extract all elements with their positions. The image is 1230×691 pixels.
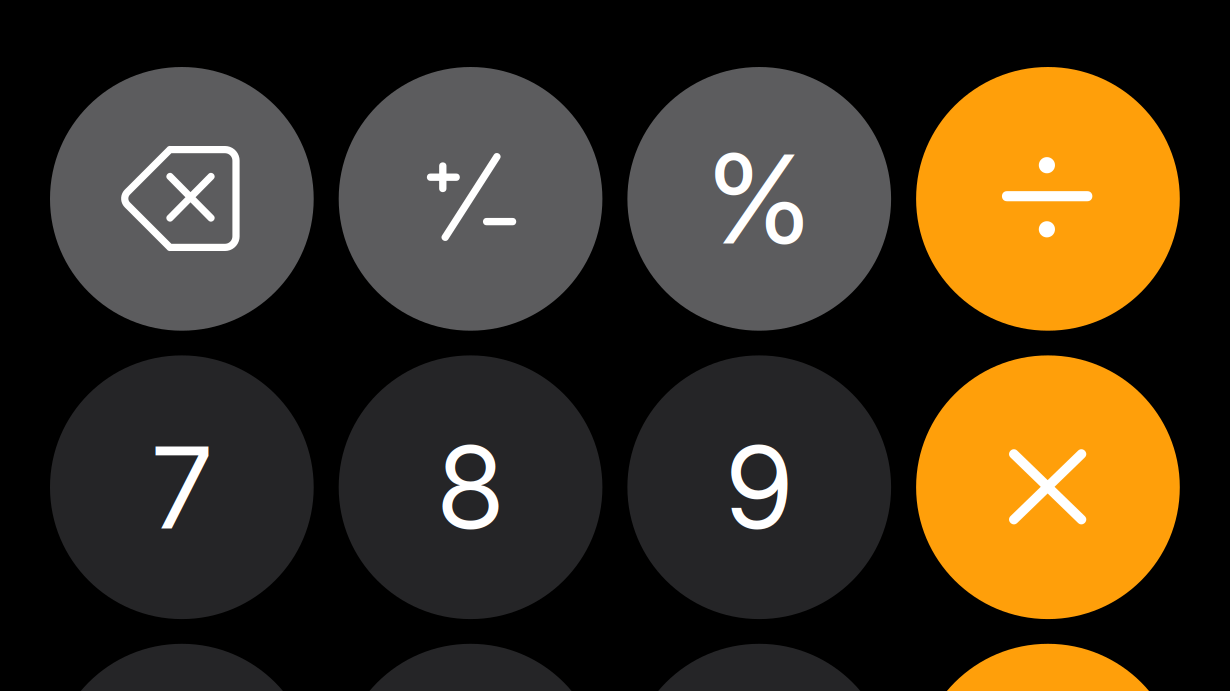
button[interactable]: 8 — [339, 355, 602, 619]
button[interactable]: 9 — [627, 355, 891, 619]
button[interactable]: 6 — [627, 644, 891, 691]
staticText: 8 — [437, 419, 503, 556]
staticText: 7 — [153, 419, 211, 556]
staticText: % — [707, 125, 811, 273]
button[interactable]: % — [627, 67, 891, 331]
button[interactable]: Multiply — [916, 355, 1180, 619]
button[interactable]: 5 — [339, 644, 602, 691]
button[interactable]: 7 — [50, 355, 314, 619]
button[interactable]: Subtract — [916, 644, 1180, 691]
button[interactable]: Delete — [50, 67, 314, 331]
button[interactable]: Divide — [916, 67, 1180, 331]
button[interactable]: 4 — [50, 644, 314, 691]
staticText: 9 — [726, 419, 792, 556]
button[interactable]: Toggle sign — [339, 67, 602, 331]
